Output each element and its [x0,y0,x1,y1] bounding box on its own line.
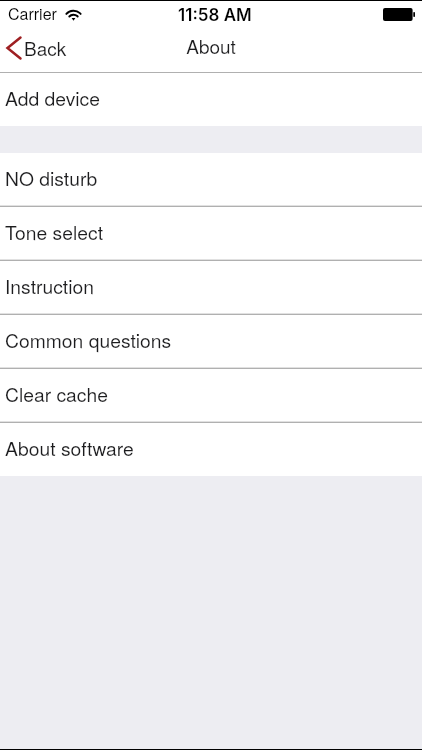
button[interactable]: Common questions [0,315,422,368]
staticText: Instruction [5,272,94,300]
button[interactable]: Instruction [0,261,422,314]
button[interactable]: Clear cache [0,369,422,422]
staticText: About [186,32,236,59]
staticText: Back [24,34,67,61]
button[interactable]: Add device [0,73,422,126]
button[interactable]: Tone select [0,207,422,260]
button[interactable]: About software [0,423,422,476]
other: Battery full [383,8,415,21]
button[interactable]: Back [0,30,79,63]
other: Wi-Fi signal [64,7,83,20]
staticText: Carrier [8,2,57,25]
staticText: Common questions [5,326,172,354]
staticText: Clear cache [5,380,108,408]
button[interactable]: NO disturb [0,153,422,206]
staticText: Add device [5,84,100,112]
staticText: About software [5,434,134,462]
staticText: Tone select [5,218,104,246]
staticText: 11:58 AM [178,5,252,26]
staticText: NO disturb [5,164,98,192]
